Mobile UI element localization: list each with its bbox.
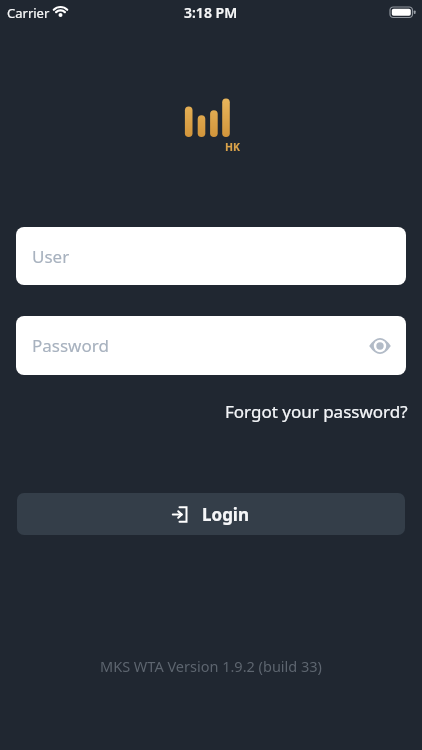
button[interactable]: Password bbox=[16, 316, 406, 375]
staticText: 3:18 PM bbox=[184, 3, 238, 22]
staticText: Forgot your password? bbox=[225, 400, 408, 423]
staticText: Password bbox=[32, 334, 109, 357]
staticText: User bbox=[32, 245, 70, 268]
staticText: HK bbox=[225, 140, 241, 154]
button[interactable]: Login bbox=[17, 493, 405, 535]
button[interactable] bbox=[368, 334, 392, 358]
staticText: Carrier bbox=[7, 4, 50, 22]
button[interactable]: Forgot your password? bbox=[225, 400, 408, 423]
button[interactable]: User bbox=[16, 227, 406, 285]
staticText: MKS WTA Version 1.9.2 (build 33) bbox=[100, 656, 322, 676]
staticText: Login bbox=[202, 503, 250, 526]
